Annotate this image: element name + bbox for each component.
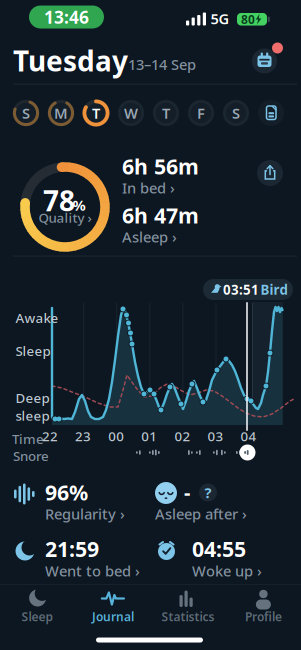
staticText: Asleep › — [122, 227, 177, 246]
staticText: Snore — [13, 447, 49, 465]
staticText: 13:46 — [44, 5, 89, 28]
button[interactable]: W — [117, 99, 145, 127]
staticText: In bed › — [122, 178, 175, 197]
button[interactable]: - — [155, 480, 287, 520]
staticText: T — [162, 103, 170, 123]
button[interactable]: T — [82, 99, 110, 127]
staticText: 78 — [43, 182, 75, 219]
button[interactable]: 03:51 — [203, 279, 293, 300]
button[interactable]: 6h 47m — [122, 201, 217, 243]
button[interactable]: 6h 56m — [122, 152, 217, 194]
button[interactable] — [257, 160, 283, 186]
staticText: F — [197, 103, 205, 123]
staticText: T — [92, 103, 100, 123]
button[interactable]: Journal — [78, 589, 148, 627]
staticText: 80 — [241, 11, 255, 27]
staticText: Regularity › — [45, 504, 125, 523]
staticText: Quality › — [38, 209, 91, 226]
staticText: 96% — [45, 478, 88, 506]
staticText: Bird — [260, 281, 287, 298]
staticText: Deep sleep — [15, 389, 49, 424]
staticText: Awake — [15, 309, 58, 327]
button[interactable]: S — [12, 99, 40, 127]
staticText: Sleep — [22, 608, 54, 624]
staticText: Time — [12, 430, 44, 448]
staticText: Statistics — [162, 608, 215, 624]
staticText: Sleep — [15, 342, 50, 360]
staticText: Asleep after › — [155, 504, 247, 523]
staticText: 03:51 — [223, 281, 259, 298]
staticText: S — [232, 103, 240, 123]
staticText: 13–14 Sep — [128, 54, 196, 74]
button[interactable]: S — [222, 99, 250, 127]
staticText: ? — [204, 483, 211, 502]
button[interactable]: Profile — [228, 589, 298, 627]
staticText: M — [54, 103, 68, 123]
staticText: Woke up › — [192, 561, 262, 580]
button[interactable]: 04:55 — [155, 537, 287, 577]
staticText: Journal — [92, 608, 134, 624]
staticText: 03 — [207, 427, 223, 445]
staticText: - — [184, 479, 190, 505]
staticText: 04:55 — [192, 534, 246, 563]
button[interactable]: 21:59 — [14, 537, 146, 577]
staticText: Profile — [245, 608, 282, 624]
button[interactable]: Sleep — [3, 589, 73, 627]
staticText: 22 — [42, 427, 58, 445]
button[interactable]: 96% — [14, 480, 146, 520]
staticText: 21:59 — [45, 534, 99, 563]
button[interactable] — [257, 99, 285, 127]
staticText: 01 — [141, 427, 157, 445]
staticText: 00 — [108, 427, 124, 445]
staticText: % — [72, 195, 85, 215]
staticText: 5G — [210, 9, 229, 28]
button[interactable]: F — [187, 99, 215, 127]
button[interactable] — [244, 39, 288, 83]
button[interactable]: M — [47, 99, 75, 127]
button[interactable]: 78 — [13, 155, 117, 259]
staticText: 04 — [241, 427, 257, 445]
staticText: 6h 47m — [122, 201, 199, 229]
staticText: 02 — [174, 427, 190, 445]
staticText: 6h 56m — [122, 152, 199, 180]
staticText: Went to bed › — [45, 561, 140, 580]
button[interactable]: Statistics — [153, 589, 223, 627]
button[interactable] — [239, 444, 256, 461]
staticText: Tuesday — [13, 42, 128, 79]
staticText: W — [124, 103, 138, 123]
button[interactable]: T — [152, 99, 180, 127]
staticText: S — [22, 103, 30, 123]
staticText: 23 — [75, 427, 91, 445]
